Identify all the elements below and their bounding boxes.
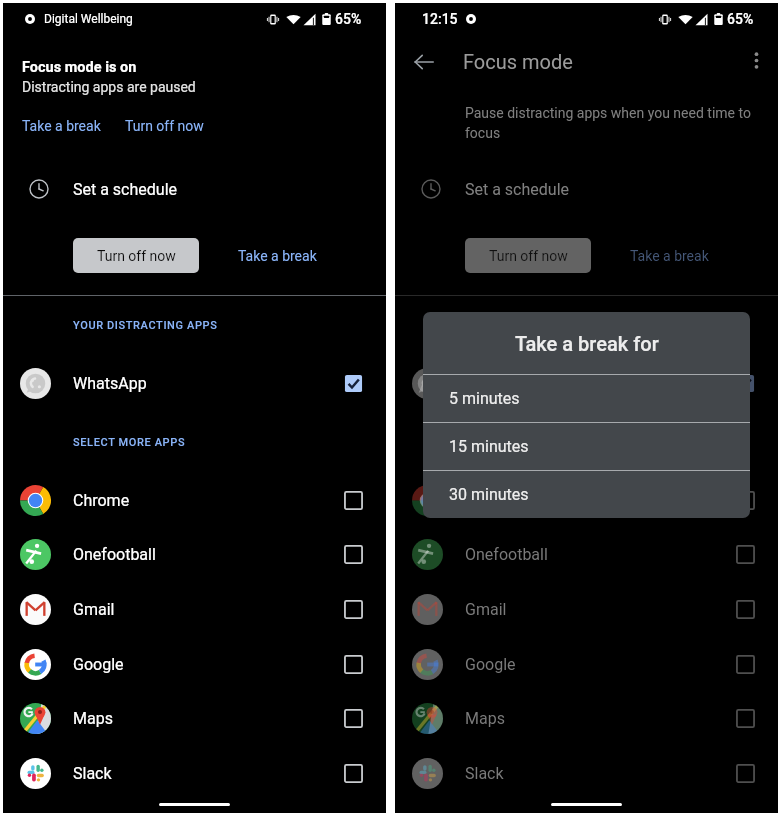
staticText: Google bbox=[73, 655, 124, 674]
staticText: Pause distracting apps when you need tim… bbox=[465, 105, 751, 141]
staticText: 12:15 bbox=[422, 11, 458, 27]
button[interactable]: 5 minutes bbox=[423, 375, 750, 422]
button[interactable]: WhatsApp bbox=[395, 365, 778, 401]
staticText: Chrome bbox=[73, 491, 130, 510]
staticText: Focus mode bbox=[463, 50, 573, 73]
button[interactable]: Onefootball bbox=[3, 536, 386, 572]
staticText: 65% bbox=[335, 11, 362, 27]
staticText: 15 minutes bbox=[449, 437, 529, 456]
staticText: Set a schedule bbox=[73, 180, 178, 199]
button[interactable]: Gmail bbox=[395, 591, 778, 627]
staticText: YOUR DISTRACTING APPS bbox=[73, 319, 218, 332]
staticText: Slack bbox=[73, 764, 112, 783]
button[interactable]: Take a break bbox=[630, 238, 730, 273]
staticText: WhatsApp bbox=[73, 374, 147, 393]
button[interactable]: Turn off now bbox=[465, 238, 591, 273]
staticText: Take a break bbox=[22, 118, 101, 134]
staticText: WhatsApp bbox=[465, 374, 539, 393]
button[interactable]: Take a break bbox=[238, 238, 338, 273]
button[interactable]: Turn off now bbox=[73, 238, 199, 273]
staticText: Chrome bbox=[465, 491, 522, 510]
button[interactable]: Slack bbox=[395, 755, 778, 791]
staticText: Focus mode is on bbox=[22, 59, 137, 76]
button[interactable]: WhatsApp bbox=[3, 365, 386, 401]
button[interactable]: Maps bbox=[3, 700, 386, 736]
staticText: Take a break bbox=[238, 248, 317, 264]
staticText: Take a break bbox=[630, 248, 709, 264]
staticText: Set a schedule bbox=[465, 180, 570, 199]
button[interactable]: Set a schedule bbox=[395, 166, 778, 212]
button[interactable]: Chrome bbox=[3, 482, 386, 518]
button[interactable]: 15 minutes bbox=[423, 423, 750, 470]
staticText: 65% bbox=[727, 11, 754, 27]
staticText: Gmail bbox=[465, 600, 507, 619]
staticText: Digital Wellbeing bbox=[44, 12, 133, 26]
button[interactable]: More options bbox=[741, 45, 772, 76]
staticText: Take a break for bbox=[515, 332, 659, 355]
staticText: Google bbox=[465, 655, 516, 674]
button[interactable]: Chrome bbox=[395, 482, 778, 518]
button[interactable]: Back bbox=[400, 38, 448, 86]
staticText: Turn off now bbox=[97, 248, 176, 264]
button[interactable]: Slack bbox=[3, 755, 386, 791]
staticText: 5 minutes bbox=[449, 389, 520, 408]
staticText: Distracting apps are paused bbox=[22, 79, 196, 95]
staticText: Turn off now bbox=[125, 118, 204, 134]
button[interactable]: Set a schedule bbox=[3, 166, 386, 212]
staticText: Gmail bbox=[73, 600, 115, 619]
staticText: Onefootball bbox=[73, 545, 156, 564]
button[interactable]: Turn off now bbox=[125, 118, 204, 134]
staticText: 30 minutes bbox=[449, 485, 529, 504]
button[interactable]: 30 minutes bbox=[423, 471, 750, 518]
button[interactable]: Take a break bbox=[22, 118, 101, 134]
button[interactable]: Onefootball bbox=[395, 536, 778, 572]
staticText: Turn off now bbox=[489, 248, 568, 264]
staticText: Onefootball bbox=[465, 545, 548, 564]
staticText: SELECT MORE APPS bbox=[73, 436, 186, 449]
button[interactable]: Maps bbox=[395, 700, 778, 736]
staticText: Slack bbox=[465, 764, 504, 783]
button[interactable]: Google bbox=[3, 646, 386, 682]
staticText: Maps bbox=[465, 709, 505, 728]
button[interactable]: Google bbox=[395, 646, 778, 682]
button[interactable]: Gmail bbox=[3, 591, 386, 627]
staticText: Maps bbox=[73, 709, 113, 728]
